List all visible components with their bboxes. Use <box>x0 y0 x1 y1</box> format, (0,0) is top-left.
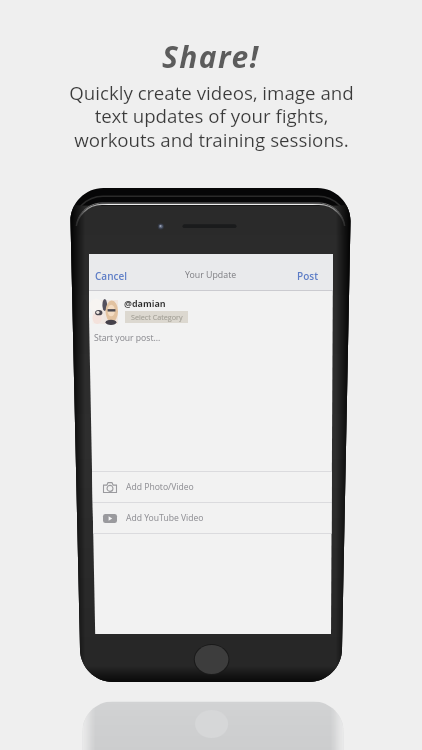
staticText: Post <box>297 269 319 283</box>
button[interactable]: Add YouTube Video <box>89 503 333 533</box>
staticText: @damian <box>124 297 166 309</box>
button[interactable]: Post <box>297 269 319 283</box>
staticText: Quickly create videos, image and text up… <box>69 80 354 153</box>
button[interactable]: Add Photo/Video <box>89 472 333 502</box>
button[interactable]: Cancel <box>95 269 127 283</box>
staticText: Cancel <box>95 269 127 283</box>
staticText: Share! <box>162 36 260 77</box>
staticText: Select Category <box>131 312 183 322</box>
staticText: Add Photo/Video <box>126 481 194 493</box>
button[interactable]: Select Category <box>125 311 188 323</box>
staticText: Add YouTube Video <box>126 512 204 524</box>
staticText: Start your post... <box>94 332 161 344</box>
other: Profile photo <box>92 300 118 324</box>
staticText: Your Update <box>185 269 237 281</box>
